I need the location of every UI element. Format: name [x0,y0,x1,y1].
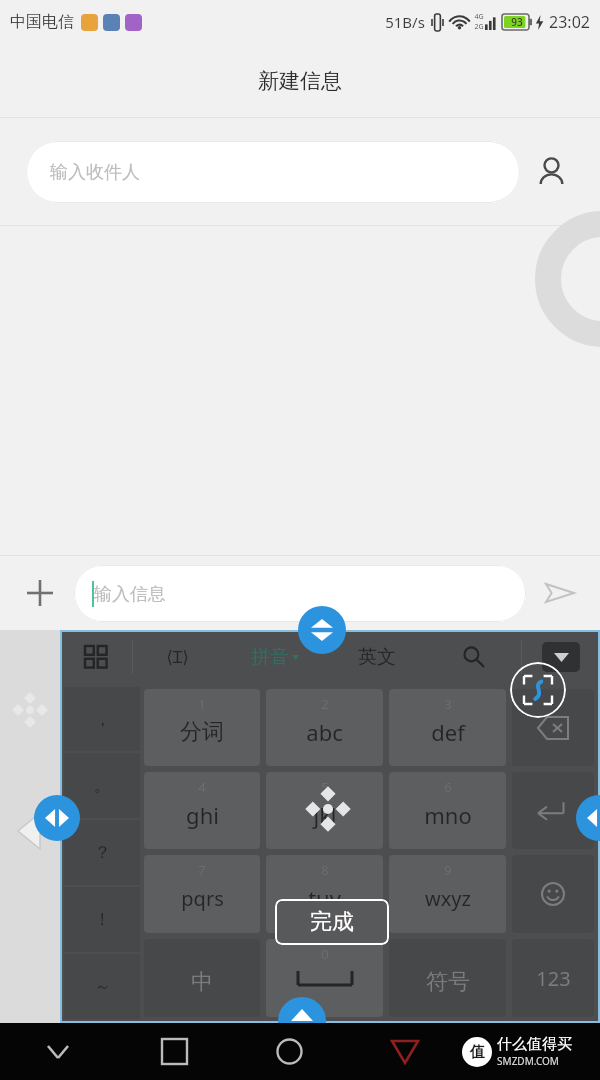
button[interactable]: 英文 [329,630,425,683]
button[interactable]: ？ [64,820,140,885]
staticText: ghi [186,800,219,830]
button[interactable]: ☺ [512,855,594,933]
button[interactable]: 2 [266,689,383,766]
staticText: abc [306,717,343,747]
button[interactable]: ⌫ [512,689,594,766]
staticText: tuv [308,883,341,913]
staticText: ⟨Ɪ⟩ [166,645,189,668]
button[interactable]: 8 [266,855,383,933]
staticText: 符号 [426,968,470,996]
button[interactable]: 5 [266,772,383,849]
staticText: 3 [444,695,452,713]
staticText: ？ [94,842,111,863]
button[interactable]: 拼音 [221,630,329,683]
staticText: 输入信息 [94,583,166,606]
button[interactable]: 4 [144,772,260,849]
button[interactable]: 返回 [347,1023,462,1080]
staticText: 分词 [180,718,224,746]
staticText: 6 [444,778,452,796]
staticText: 值 [470,1043,485,1062]
button[interactable]: 右边界 [576,795,600,841]
staticText: 中 [191,968,213,996]
staticText: jkl [313,800,337,830]
staticText: pqrs [181,885,224,912]
staticText: 拼音 [251,645,289,669]
button[interactable]: 0 [266,939,383,1017]
button[interactable]: 输入收件人 [26,141,520,203]
button[interactable]: 添加附件 [16,569,64,617]
button[interactable]: 9 [389,855,506,933]
staticText: 7 [198,861,206,879]
staticText: 新建信息 [258,68,342,94]
staticText: 5 [321,778,329,796]
button[interactable]: 3 [389,689,506,766]
staticText: ， [94,709,111,730]
button[interactable]: 中 [144,939,260,1017]
staticText: mno [424,800,472,830]
button[interactable]: 主页 [232,1023,347,1080]
button[interactable]: 菜单 [60,630,132,683]
staticText: 什么值得买 [497,1035,572,1054]
button[interactable]: 光标编辑 [133,630,221,683]
button[interactable]: 隐藏键盘 [0,1023,116,1080]
staticText: ！ [94,909,111,930]
staticText: 2G [474,22,484,32]
button[interactable]: 发送 [536,569,584,617]
button[interactable]: 最近任务 [116,1023,232,1080]
button[interactable]: 收起键盘 [522,630,600,683]
button[interactable]: 。 [64,753,140,818]
button[interactable]: 搜索 [425,630,521,683]
staticText: 9 [444,861,452,879]
staticText: 4 [198,778,206,796]
button[interactable]: 输入信息 [74,565,526,622]
staticText: 0 [321,945,329,963]
button[interactable]: 下边界 [278,997,326,1045]
staticText: 英文 [358,645,396,669]
button[interactable]: 选择联系人 [520,141,582,203]
staticText: def [431,717,465,747]
staticText: 93 [511,15,523,29]
button[interactable]: ⏎ [512,772,594,849]
button[interactable]: 手写输入 [510,662,566,718]
staticText: SMZDM.COM [497,1054,559,1068]
button[interactable]: 左边界 [34,795,80,841]
staticText: 1 [198,695,206,713]
staticText: 51B/s [385,12,425,32]
staticText: 输入收件人 [50,161,140,184]
staticText: ～ [94,976,111,997]
staticText: 8 [321,861,329,879]
staticText: 2 [321,695,329,713]
button[interactable]: 调整高度 [298,606,346,654]
button[interactable]: 123 [512,939,594,1017]
button[interactable]: 7 [144,855,260,933]
button[interactable]: 1 [144,689,260,766]
staticText: 中国电信 [10,12,74,32]
button[interactable]: 完成 [275,899,389,945]
staticText: 4G [474,12,484,22]
staticText: 完成 [310,908,354,936]
staticText: 123 [536,965,571,992]
staticText: 23:02 [549,11,590,33]
button[interactable]: 6 [389,772,506,849]
staticText: wxyz [425,885,471,912]
button[interactable]: 符号 [389,939,506,1017]
